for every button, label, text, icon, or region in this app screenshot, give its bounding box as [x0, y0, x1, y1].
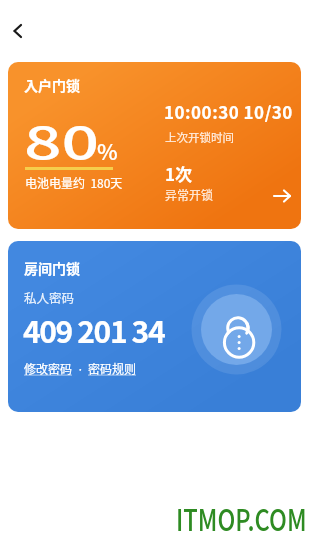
button[interactable]: 房间门锁 — [8, 241, 301, 412]
staticText: 409 201 34 — [23, 308, 165, 351]
staticText: · — [77, 360, 84, 377]
staticText: 房间门锁 — [24, 258, 80, 278]
staticText: 电池电量约 180天 — [25, 174, 123, 191]
staticText: 10:00:30 10/30 — [164, 99, 293, 124]
staticText: ITMOP.COM — [176, 496, 307, 539]
staticText: 80 — [24, 108, 100, 172]
button[interactable]: 修改密码 — [24, 360, 73, 377]
button[interactable] — [270, 184, 294, 208]
button[interactable] — [8, 21, 30, 43]
staticText: % — [97, 134, 118, 166]
staticText: 私人密码 — [24, 288, 75, 306]
button[interactable]: 入户门锁 — [8, 62, 301, 229]
staticText: 1次 — [165, 161, 193, 186]
staticText: 上次开锁时间 — [165, 129, 234, 146]
staticText: 异常开锁 — [165, 186, 214, 203]
staticText: 入户门锁 — [24, 75, 80, 95]
button[interactable]: 密码规则 — [88, 360, 137, 377]
